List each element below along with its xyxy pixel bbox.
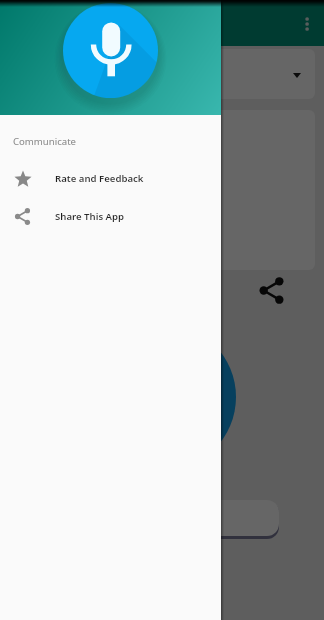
button[interactable]: Share: [250, 270, 290, 310]
button[interactable]: Rate and Feedback: [0, 159, 221, 197]
button[interactable]: [9, 49, 315, 99]
staticText: Rate and Feedback: [55, 172, 144, 185]
button[interactable]: Record: [88, 323, 236, 471]
staticText: Share This App: [55, 210, 125, 223]
button[interactable]: [45, 500, 279, 536]
button[interactable]: Share This App: [0, 197, 221, 235]
staticText: Communicate: [13, 135, 77, 148]
button[interactable]: More options: [291, 8, 323, 40]
